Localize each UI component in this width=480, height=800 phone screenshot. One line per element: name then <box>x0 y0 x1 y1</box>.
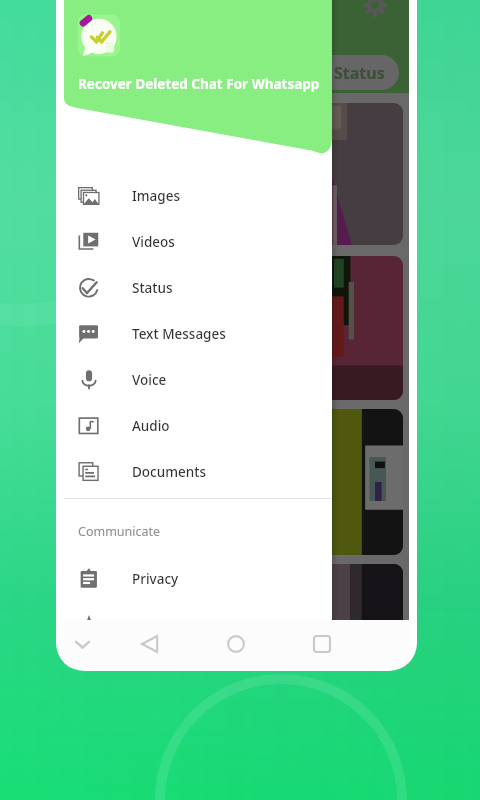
staticText: Voice <box>132 371 167 389</box>
staticText: Text Messages <box>132 325 226 343</box>
button[interactable]: Documents <box>64 449 332 495</box>
button[interactable]: Text Messages <box>64 311 332 357</box>
staticText: Recover Deleted Chat For Whatsapp <box>78 75 320 93</box>
staticText: Privacy <box>132 570 179 588</box>
button[interactable]: Audio <box>64 403 332 449</box>
staticText: Images <box>132 187 180 205</box>
staticText: Communicate <box>78 523 161 540</box>
button[interactable]: Hide keyboard <box>64 626 100 662</box>
button[interactable]: Videos <box>64 219 332 265</box>
button[interactable]: Voice <box>64 357 332 403</box>
button[interactable]: Images <box>64 173 332 219</box>
button[interactable]: Home <box>218 626 254 662</box>
button[interactable]: Status <box>64 265 332 311</box>
button[interactable]: Recents <box>304 626 340 662</box>
staticText: Videos <box>132 233 175 251</box>
button[interactable]: Privacy <box>64 556 332 602</box>
button[interactable]: Back <box>132 626 168 662</box>
other: Settings <box>363 0 387 17</box>
staticText: Status <box>334 62 385 84</box>
staticText: Audio <box>132 417 170 435</box>
staticText: Documents <box>132 463 206 481</box>
button[interactable]: Rate Us <box>64 602 332 648</box>
staticText: Status <box>132 279 173 297</box>
button[interactable]: Status <box>66 55 399 90</box>
